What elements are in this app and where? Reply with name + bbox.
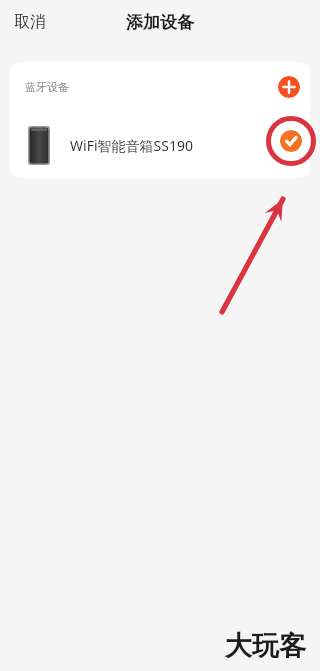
- staticText: 取消: [14, 12, 46, 32]
- button[interactable]: 取消: [8, 8, 52, 36]
- button[interactable]: 添加蓝牙设备: [278, 76, 300, 98]
- button[interactable]: 已选择 WiFi智能音箱SS190: [280, 130, 302, 152]
- staticText: WiFi智能音箱SS190: [70, 136, 193, 155]
- staticText: 蓝牙设备: [25, 80, 69, 94]
- staticText: 大玩客: [225, 629, 306, 663]
- staticText: 添加设备: [126, 12, 194, 33]
- button[interactable]: WiFi智能音箱SS190: [10, 112, 310, 178]
